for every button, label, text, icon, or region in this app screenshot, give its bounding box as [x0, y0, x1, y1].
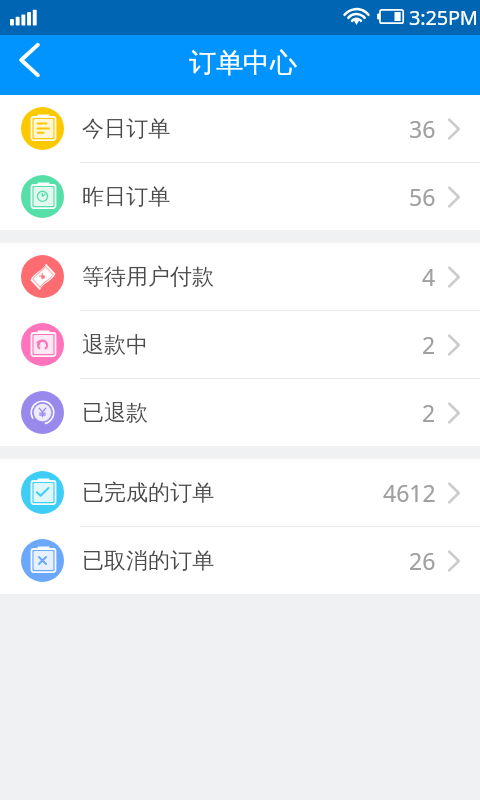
staticText: 今日订单	[82, 115, 170, 143]
staticText: 订单中心	[189, 46, 297, 80]
staticText: 已完成的订单	[82, 479, 214, 507]
staticText: 36	[409, 113, 436, 144]
button[interactable]: 退款中	[0, 311, 480, 378]
staticText: 等待用户付款	[82, 263, 214, 291]
staticText: 2	[422, 397, 436, 428]
button[interactable]: 已取消的订单	[0, 527, 480, 594]
button[interactable]: 等待用户付款	[0, 243, 480, 310]
staticText: 26	[409, 545, 436, 576]
staticText: 昨日订单	[82, 183, 170, 211]
staticText: 3:25PM	[409, 4, 478, 31]
button[interactable]: Back	[1, 32, 57, 88]
staticText: 56	[409, 181, 436, 212]
staticText: 已取消的订单	[82, 547, 214, 575]
button[interactable]: 已退款	[0, 379, 480, 446]
button[interactable]: 已完成的订单	[0, 459, 480, 526]
button[interactable]: 今日订单	[0, 95, 480, 162]
staticText: 4612	[383, 477, 436, 508]
button[interactable]: 昨日订单	[0, 163, 480, 230]
staticText: 4	[422, 261, 436, 292]
staticText: 已退款	[82, 399, 148, 427]
staticText: 退款中	[82, 331, 148, 359]
staticText: 2	[422, 329, 436, 360]
